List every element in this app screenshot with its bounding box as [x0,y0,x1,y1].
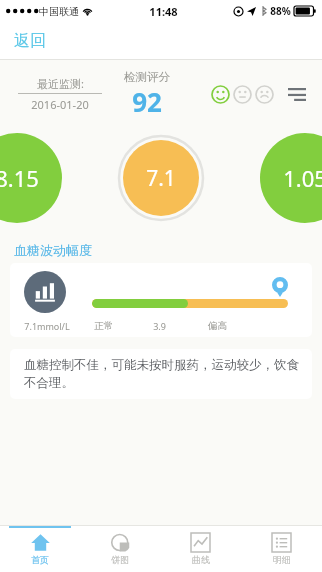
button[interactable]: 检测评分 [114,70,180,119]
staticText: 1.05 [283,163,322,193]
staticText: 2016-01-20 [31,97,89,112]
button[interactable]: Sad [255,85,274,104]
staticText: 明细 [273,554,291,565]
staticText: 中国联通 [39,5,79,18]
staticText: 首页 [31,554,49,565]
button[interactable]: Menu [284,81,310,107]
staticText: 8.15 [0,163,39,193]
button[interactable]: 1.05 [260,133,322,223]
staticText: 检测评分 [124,70,170,84]
staticText: 11:48 [149,4,178,19]
staticText: 饼图 [111,554,129,565]
staticText: 血糖控制不佳，可能未按时服药，运动较少，饮食不合理。 [24,357,300,391]
staticText: 偏高 [208,320,227,332]
button[interactable]: Happy [211,85,230,104]
button[interactable]: 7.1 [123,140,199,216]
staticText: 正常 [94,320,113,332]
staticText: 返回 [14,31,46,51]
staticText: 92 [132,84,162,119]
button[interactable]: 曲线 [160,526,241,572]
staticText: 曲线 [192,554,210,565]
button[interactable]: Neutral [233,85,252,104]
button[interactable]: 7.1mmol/L [10,263,312,337]
button[interactable]: 首页 [0,526,80,572]
button[interactable]: 明细 [241,526,322,572]
button[interactable]: 最近监测: [12,76,108,112]
staticText: 3.9 [153,320,166,332]
button[interactable]: 8.15 [0,133,62,223]
staticText: 7.1 [146,164,176,193]
button[interactable]: 返回 [8,27,52,55]
staticText: 最近监测: [37,76,84,91]
staticText: 血糖波动幅度 [14,242,92,258]
staticText: 7.1mmol/L [24,320,70,332]
staticText: 88% [270,4,291,18]
button[interactable]: 血糖控制不佳，可能未按时服药，运动较少，饮食不合理。 [10,349,312,399]
button[interactable]: 饼图 [80,526,160,572]
